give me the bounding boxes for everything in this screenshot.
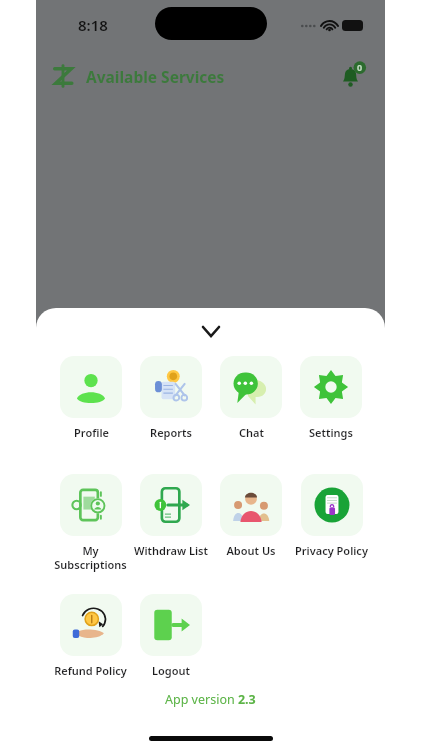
button[interactable]: My Subscriptions: [54, 472, 127, 574]
staticText: Refund Policy: [54, 663, 127, 678]
staticText: Chat: [239, 425, 264, 440]
button[interactable]: Logout: [140, 592, 202, 680]
staticText: 0: [357, 61, 363, 73]
staticText: App version 2.3: [165, 691, 256, 708]
staticText: Available Services: [86, 66, 225, 87]
staticText: Profile: [74, 425, 109, 440]
staticText: Withdraw List: [134, 543, 208, 558]
staticText: 8:18: [78, 15, 108, 35]
button[interactable]: Profile: [60, 354, 122, 442]
staticText: My Subscriptions: [54, 543, 127, 572]
button[interactable]: Collapse: [194, 314, 228, 348]
button[interactable]: Withdraw List: [134, 472, 208, 560]
button[interactable]: Settings: [300, 354, 362, 442]
button[interactable]: Chat: [220, 354, 282, 442]
button[interactable]: Refund Policy: [54, 592, 127, 680]
button[interactable]: Notifications: [335, 59, 369, 93]
button[interactable]: Reports: [140, 354, 202, 442]
staticText: Logout: [152, 663, 190, 678]
staticText: Reports: [150, 425, 192, 440]
staticText: Privacy Policy: [295, 543, 368, 558]
staticText: About Us: [226, 543, 276, 558]
staticText: Settings: [309, 425, 353, 440]
button[interactable]: Privacy Policy: [295, 472, 368, 560]
button[interactable]: About Us: [220, 472, 282, 560]
